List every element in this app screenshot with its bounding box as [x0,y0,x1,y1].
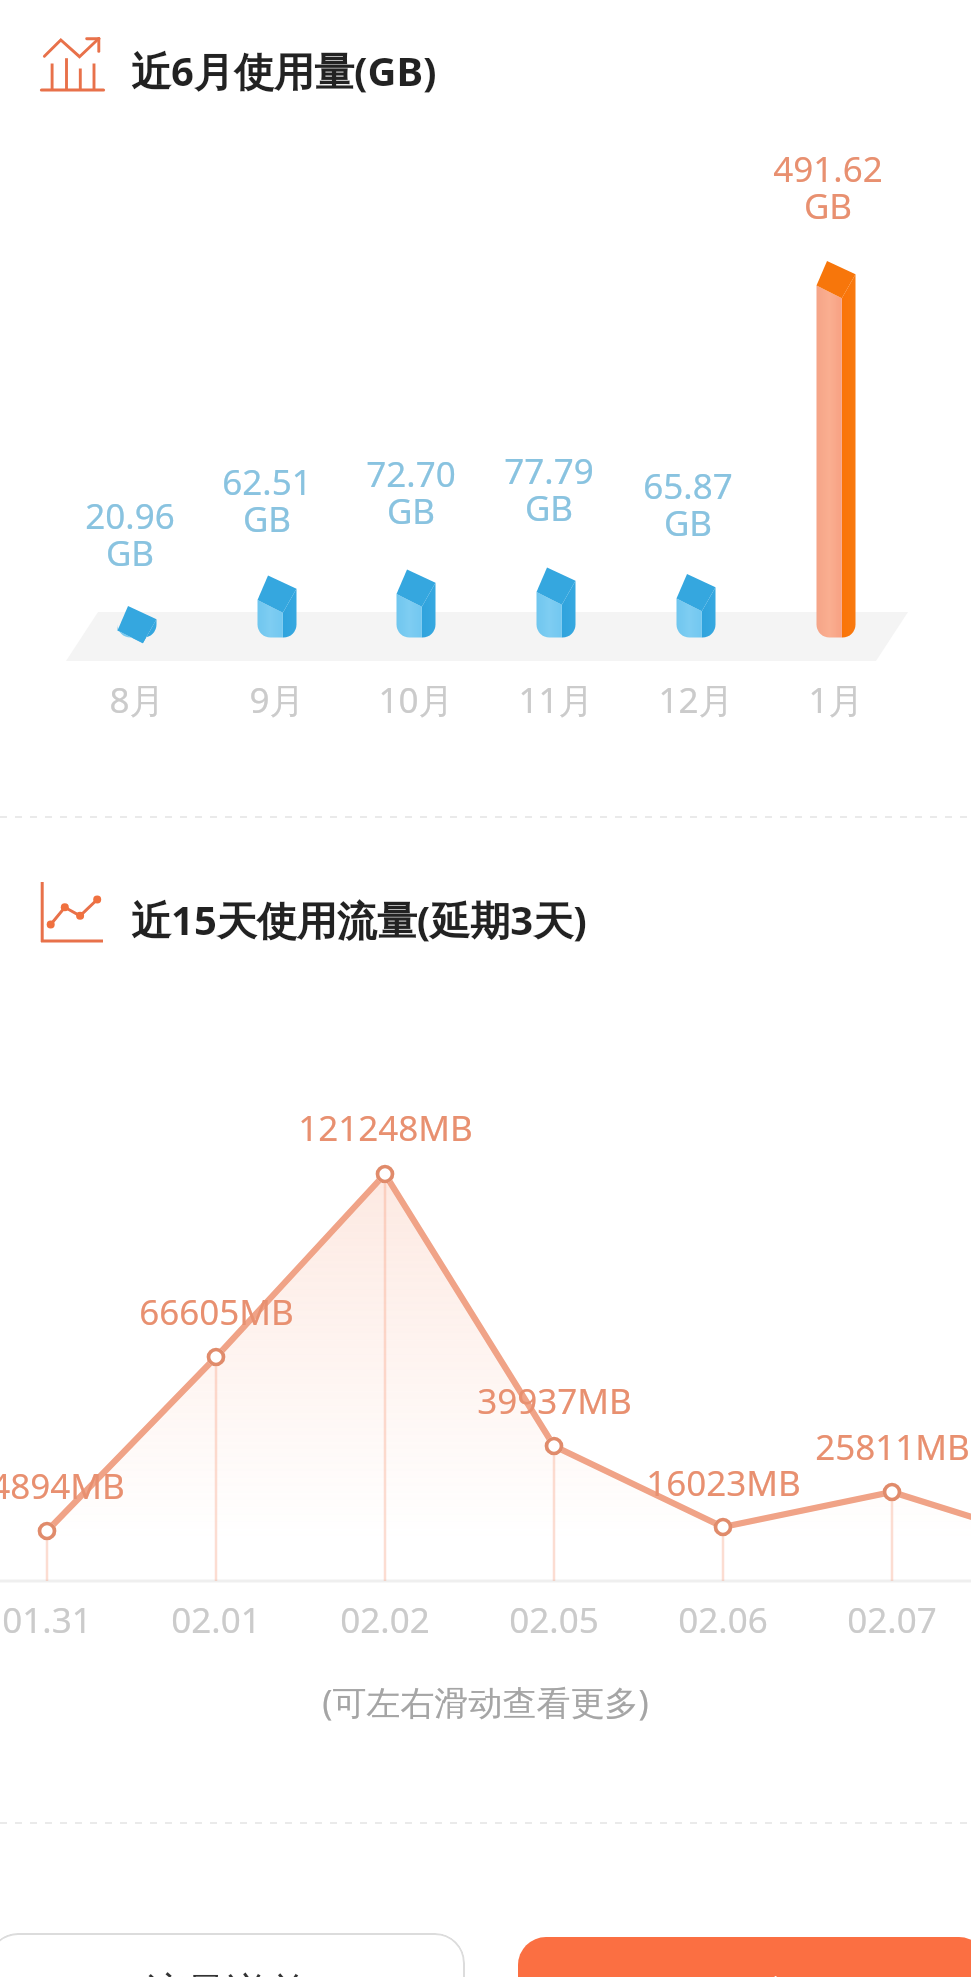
staticText: 72.70 GB [366,450,456,534]
staticText: 16023MB [646,1459,801,1507]
staticText: 62.51 GB [222,458,312,542]
staticText: 77.79 GB [504,447,594,531]
staticText: 02.01 [171,1596,261,1644]
staticText: (可左右滑动查看更多) [0,1679,971,1725]
staticText: 流量详单 [145,1968,309,1977]
staticText: 9月 [249,676,305,724]
staticText: 20.96 GB [85,492,175,576]
button[interactable]: 每日流量趋势 [0,871,971,951]
staticText: 02.02 [340,1596,430,1644]
staticText: 12月 [658,676,734,724]
staticText: 近15天使用流量(延期3天) [131,892,587,947]
staticText: 02.06 [678,1596,768,1644]
staticText: 02.07 [847,1596,937,1644]
button[interactable]: 月使用量趋势 [0,24,971,104]
button[interactable]: 近6月使用量柱状图 [0,120,971,720]
staticText: 491.62 GB [773,145,883,229]
button[interactable]: 近15天使用流量折线图 [0,1000,971,1640]
staticText: 8月 [109,676,165,724]
staticText: 25811MB [815,1423,970,1471]
staticText: 14894MB [0,1462,125,1510]
staticText: 办理流量 [671,1972,835,1977]
staticText: 11月 [518,676,594,724]
other: 每日流量趋势 [41,882,104,943]
other: 月使用量趋势 [41,37,104,92]
staticText: 10月 [378,676,454,724]
staticText: 01.31 [2,1596,92,1644]
button[interactable]: 流量详单 [0,1933,465,1977]
staticText: 121248MB [298,1104,473,1152]
staticText: 02.05 [509,1596,599,1644]
staticText: 1月 [808,676,864,724]
button[interactable]: 办理流量 [518,1937,971,1977]
staticText: 66605MB [139,1288,294,1336]
staticText: 39937MB [477,1377,632,1425]
staticText: 近6月使用量(GB) [131,43,437,98]
staticText: 65.87 GB [643,462,733,546]
